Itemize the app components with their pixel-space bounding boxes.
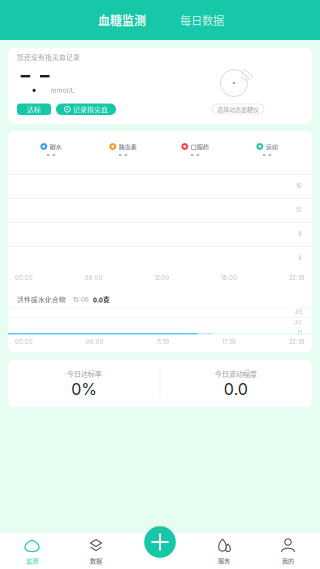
button[interactable]: 选择动态血糖仪 <box>212 104 264 114</box>
staticText: 选择动态血糖仪 <box>217 105 259 113</box>
staticText: 0.0克 <box>93 295 110 304</box>
staticText: 0% <box>71 379 97 399</box>
button[interactable]: 监测 <box>0 533 64 569</box>
staticText: 12 <box>296 206 302 214</box>
staticText: 胰岛素 <box>119 142 137 151</box>
staticText: 今日波动幅度 <box>215 368 257 378</box>
staticText: 06:00 <box>85 274 103 281</box>
staticText: 碳水 <box>50 142 62 151</box>
staticText: 15 <box>297 329 302 336</box>
staticText: 15:06 <box>73 296 89 303</box>
staticText: 活性碳水化合物 <box>17 295 66 304</box>
staticText: 每日数据 <box>180 12 224 28</box>
button[interactable]: 数据 <box>64 533 128 569</box>
button[interactable]: 胰岛素 <box>87 140 159 160</box>
staticText: 记录指尖血 <box>73 104 108 114</box>
staticText: 00:00 <box>15 274 33 281</box>
staticText: 运动 <box>266 142 278 151</box>
button[interactable]: 碳水 <box>15 140 87 160</box>
staticText: 数据 <box>90 556 102 565</box>
staticText: 16 <box>296 182 302 190</box>
staticText: 您还没有指尖血记录 <box>17 52 80 62</box>
staticText: 11:59 <box>156 338 169 345</box>
button[interactable]: 血糖监测 <box>95 7 149 33</box>
staticText: 0.0 <box>224 379 248 399</box>
staticText: 今日达标率 <box>67 368 102 378</box>
button[interactable]: 运动 <box>231 140 303 160</box>
staticText: 45 <box>295 309 302 316</box>
staticText: 服务 <box>218 556 230 565</box>
staticText: 18:00 <box>221 274 237 281</box>
staticText: 4 <box>298 254 302 262</box>
staticText: 30 <box>294 319 302 326</box>
button[interactable]: 添加记录 <box>144 526 176 558</box>
staticText: 00:00 <box>15 338 33 345</box>
button[interactable]: 我的 <box>256 533 320 569</box>
staticText: 23:59 <box>289 338 305 345</box>
button[interactable]: 口服药 <box>159 140 231 160</box>
staticText: 8 <box>298 230 302 238</box>
staticText: 达标 <box>27 104 41 114</box>
button[interactable]: 服务 <box>192 533 256 569</box>
staticText: 06:00 <box>86 338 104 345</box>
staticText: 我的 <box>282 556 294 565</box>
staticText: 监测 <box>26 556 38 565</box>
staticText: 口服药 <box>191 142 209 151</box>
staticText: 17:59 <box>222 338 236 345</box>
button[interactable]: 记录指尖血 <box>56 103 116 115</box>
staticText: mmol/L <box>51 86 75 94</box>
button[interactable]: 达标 <box>17 103 51 115</box>
staticText: 12:00 <box>154 274 169 281</box>
button[interactable]: 每日数据 <box>179 7 225 33</box>
staticText: 23:59 <box>289 274 305 281</box>
staticText: 血糖监测 <box>98 11 146 29</box>
